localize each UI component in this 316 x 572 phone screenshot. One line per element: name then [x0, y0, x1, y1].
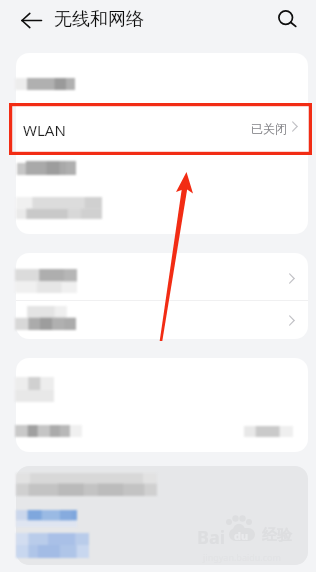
button[interactable] [16, 405, 308, 452]
button[interactable]: WLAN [16, 104, 308, 154]
staticText: du [234, 528, 249, 543]
button[interactable] [16, 52, 308, 103]
staticText: WLAN [23, 120, 66, 140]
staticText: 已关闭 [251, 121, 287, 136]
button[interactable] [14, 506, 81, 530]
button[interactable]: Search [267, 0, 309, 40]
button[interactable] [14, 531, 93, 560]
button[interactable]: Back [10, 0, 52, 40]
staticText: 无线和网络 [54, 8, 144, 31]
button[interactable] [16, 300, 308, 339]
staticText: Bai [197, 525, 226, 550]
button[interactable] [16, 155, 308, 193]
button[interactable] [16, 253, 308, 300]
button[interactable] [16, 193, 308, 234]
staticText: 经验 [262, 526, 292, 545]
button[interactable] [16, 358, 308, 405]
